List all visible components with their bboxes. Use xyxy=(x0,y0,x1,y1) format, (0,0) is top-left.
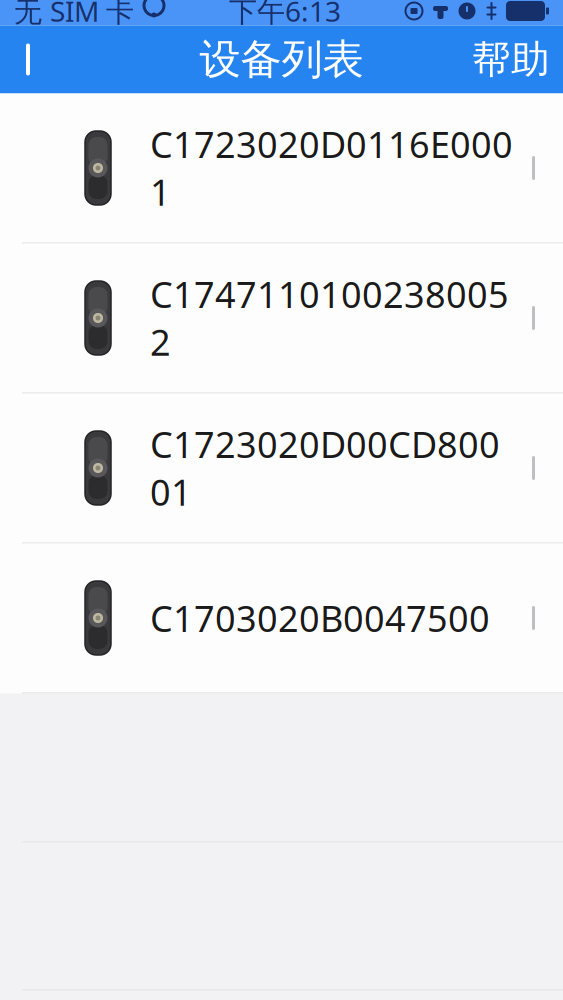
staticText: C1703020B0047500 xyxy=(150,594,490,642)
button[interactable]: 帮助 xyxy=(472,25,563,93)
button[interactable]: C1723020D00CD80001 xyxy=(0,393,563,543)
button[interactable]: C1723020D0116E0001 xyxy=(0,93,563,243)
button[interactable]: C17471101002380052 xyxy=(0,243,563,393)
staticText: C1723020D0116E0001 xyxy=(150,120,513,216)
button[interactable]: Back xyxy=(0,25,62,93)
staticText: C17471101002380052 xyxy=(150,270,509,366)
staticText: C1723020D00CD80001 xyxy=(150,420,500,516)
staticText: 帮助 xyxy=(472,36,550,83)
button[interactable]: C1703020B0047500 xyxy=(0,543,563,693)
staticText: 下午6:13 xyxy=(229,0,341,30)
staticText: 设备列表 xyxy=(199,34,363,85)
staticText: 无 SIM 卡 xyxy=(14,0,134,30)
